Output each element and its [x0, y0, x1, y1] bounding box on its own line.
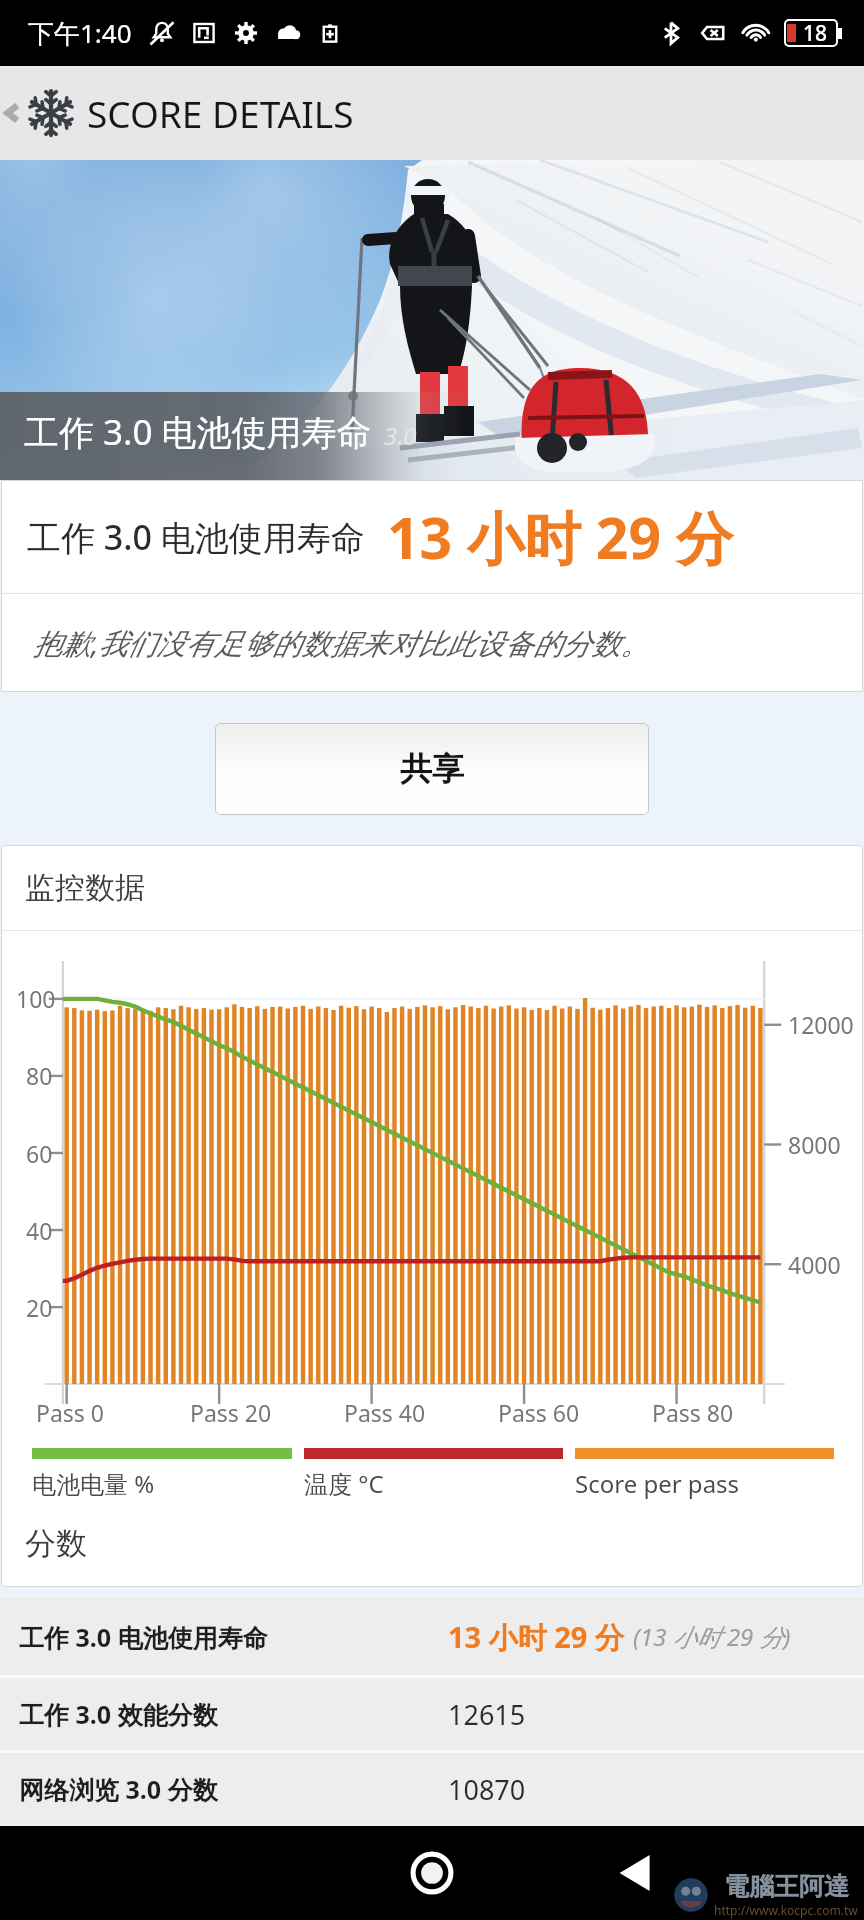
- staticText: 電腦王阿達: [724, 1871, 849, 1902]
- staticText: Pass 40: [344, 1397, 426, 1428]
- staticText: (13 小时 29 分): [633, 1620, 791, 1653]
- staticText: 3.0: [384, 419, 417, 452]
- button[interactable]: Back: [604, 1843, 664, 1903]
- staticText: 电池电量 %: [32, 1467, 155, 1500]
- staticText: 10870: [448, 1771, 526, 1808]
- button[interactable]: 工作 3.0 电池使用寿命: [0, 1598, 864, 1675]
- staticText: 40: [26, 1215, 53, 1246]
- staticText: SCORE DETAILS: [87, 88, 354, 138]
- button[interactable]: Home: [401, 1842, 463, 1904]
- staticText: http://www.kocpc.com.tw: [714, 1902, 858, 1918]
- staticText: 12000: [788, 1009, 854, 1040]
- staticText: 工作 3.0 电池使用寿命: [24, 408, 372, 456]
- staticText: 网络浏览 3.0 分数: [19, 1772, 448, 1806]
- staticText: 12615: [448, 1696, 526, 1733]
- button[interactable]: Back: [1, 88, 354, 138]
- staticText: 共享: [400, 749, 464, 789]
- staticText: 13 小时 29 分: [448, 1617, 624, 1657]
- staticText: Pass 0: [36, 1397, 104, 1428]
- staticText: Score per pass: [575, 1467, 740, 1500]
- staticText: 100: [16, 983, 56, 1014]
- button[interactable]: 共享: [215, 723, 649, 815]
- staticText: 工作 3.0 效能分数: [19, 1697, 448, 1731]
- staticText: 4000: [788, 1249, 841, 1280]
- button[interactable]: 工作 3.0 效能分数: [0, 1678, 864, 1750]
- staticText: 分数: [25, 1524, 87, 1563]
- staticText: 60: [26, 1138, 53, 1169]
- staticText: 13 小时 29 分: [387, 498, 733, 576]
- staticText: 20: [26, 1292, 53, 1323]
- staticText: 18: [803, 19, 828, 47]
- staticText: 工作 3.0 电池使用寿命: [19, 1620, 448, 1654]
- staticText: Pass 60: [498, 1397, 580, 1428]
- staticText: 80: [26, 1060, 53, 1091]
- staticText: 温度 °C: [304, 1467, 384, 1500]
- staticText: 监控数据: [25, 869, 145, 907]
- staticText: 工作 3.0 电池使用寿命: [27, 514, 365, 560]
- staticText: 8000: [788, 1129, 841, 1160]
- staticText: 下午1:40: [28, 15, 132, 51]
- staticText: Pass 80: [652, 1397, 734, 1428]
- staticText: Pass 20: [190, 1397, 272, 1428]
- button[interactable]: 网络浏览 3.0 分数: [0, 1753, 864, 1825]
- staticText: 抱歉,我们没有足够的数据来对比此设备的分数。: [33, 623, 650, 663]
